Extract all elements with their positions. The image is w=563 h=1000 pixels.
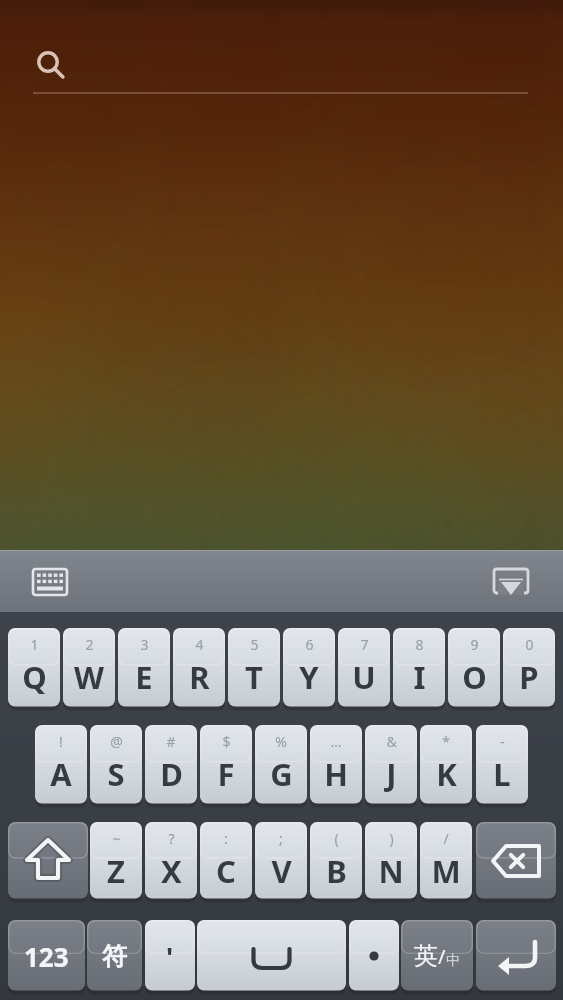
staticText: E bbox=[135, 656, 153, 698]
button[interactable]: 123 bbox=[8, 920, 85, 992]
button[interactable]: ) bbox=[365, 822, 417, 900]
button[interactable]: 6 bbox=[283, 628, 335, 708]
button[interactable]: Hide keyboard bbox=[483, 564, 539, 600]
button[interactable]: Period bbox=[349, 920, 399, 992]
staticText: 6 bbox=[305, 635, 314, 654]
staticText: … bbox=[330, 732, 342, 751]
button[interactable]: 1 bbox=[8, 628, 60, 708]
staticText: % bbox=[275, 732, 287, 751]
button[interactable]: # bbox=[145, 725, 197, 805]
button[interactable]: @ bbox=[90, 725, 142, 805]
staticText: - bbox=[500, 732, 505, 751]
staticText: V bbox=[271, 850, 292, 892]
button[interactable]: 4 bbox=[173, 628, 225, 708]
button[interactable]: 符 bbox=[87, 920, 142, 992]
staticText: ) bbox=[389, 829, 394, 848]
button[interactable]: ' bbox=[145, 920, 195, 992]
staticText: M bbox=[431, 850, 461, 892]
staticText: R bbox=[189, 656, 210, 698]
staticText: ; bbox=[279, 829, 283, 848]
staticText: ? bbox=[168, 829, 175, 848]
staticText: 123 bbox=[24, 939, 69, 974]
staticText: / bbox=[443, 829, 449, 848]
staticText: P bbox=[519, 656, 539, 698]
button[interactable]: : bbox=[200, 822, 252, 900]
button[interactable]: Enter bbox=[476, 920, 556, 992]
button[interactable]: ; bbox=[255, 822, 307, 900]
staticText: 中 bbox=[446, 952, 460, 970]
staticText: H bbox=[324, 753, 348, 795]
button[interactable]: Switch keyboard bbox=[22, 564, 78, 600]
button[interactable]: Shift bbox=[8, 822, 88, 900]
staticText: 英 bbox=[414, 941, 438, 971]
button[interactable]: 9 bbox=[448, 628, 500, 708]
button[interactable]: Switch language bbox=[401, 920, 473, 992]
button[interactable]: Space bbox=[197, 920, 346, 992]
staticText: G bbox=[270, 753, 293, 795]
staticText: T bbox=[245, 656, 263, 698]
staticText: 9 bbox=[470, 635, 479, 654]
staticText: N bbox=[378, 850, 404, 892]
staticText: C bbox=[216, 850, 236, 892]
staticText: & bbox=[386, 732, 397, 751]
button[interactable]: Backspace bbox=[476, 822, 556, 900]
staticText: ~ bbox=[112, 829, 121, 848]
staticText: ! bbox=[59, 732, 63, 751]
staticText: 2 bbox=[85, 635, 94, 654]
button[interactable]: Search bbox=[30, 38, 533, 96]
staticText: U bbox=[352, 656, 376, 698]
staticText: ' bbox=[166, 938, 174, 975]
button[interactable]: % bbox=[255, 725, 307, 805]
button[interactable]: 2 bbox=[63, 628, 115, 708]
staticText: 7 bbox=[360, 635, 369, 654]
button[interactable]: 0 bbox=[503, 628, 555, 708]
staticText: 符 bbox=[102, 941, 127, 972]
staticText: W bbox=[74, 656, 104, 698]
staticText: : bbox=[224, 829, 228, 848]
staticText: I bbox=[413, 656, 426, 698]
staticText: 8 bbox=[415, 635, 424, 654]
staticText: F bbox=[217, 753, 235, 795]
button[interactable]: ? bbox=[145, 822, 197, 900]
staticText: / bbox=[438, 943, 446, 970]
button[interactable]: ~ bbox=[90, 822, 142, 900]
staticText: Y bbox=[299, 656, 319, 698]
button[interactable]: 8 bbox=[393, 628, 445, 708]
button[interactable]: ( bbox=[310, 822, 362, 900]
staticText: Z bbox=[107, 850, 125, 892]
staticText: D bbox=[160, 753, 183, 795]
button[interactable]: 7 bbox=[338, 628, 390, 708]
button[interactable]: / bbox=[420, 822, 472, 900]
button[interactable]: 3 bbox=[118, 628, 170, 708]
staticText: X bbox=[161, 850, 182, 892]
button[interactable]: & bbox=[365, 725, 417, 805]
button[interactable]: * bbox=[420, 725, 472, 805]
staticText: # bbox=[166, 732, 176, 751]
staticText: Q bbox=[22, 656, 47, 698]
staticText: B bbox=[326, 850, 347, 892]
button[interactable]: 5 bbox=[228, 628, 280, 708]
button[interactable]: ! bbox=[35, 725, 87, 805]
staticText: * bbox=[442, 732, 450, 751]
staticText: ( bbox=[334, 829, 339, 848]
staticText: $ bbox=[222, 732, 231, 751]
staticText: S bbox=[107, 753, 125, 795]
staticText: 5 bbox=[250, 635, 259, 654]
staticText: A bbox=[50, 753, 72, 795]
staticText: 0 bbox=[525, 635, 534, 654]
staticText: K bbox=[436, 753, 457, 795]
staticText: 1 bbox=[30, 635, 39, 654]
staticText: @ bbox=[110, 732, 123, 751]
staticText: 3 bbox=[140, 635, 149, 654]
staticText: J bbox=[386, 753, 397, 795]
button[interactable]: $ bbox=[200, 725, 252, 805]
button[interactable]: … bbox=[310, 725, 362, 805]
button[interactable]: - bbox=[476, 725, 528, 805]
staticText: O bbox=[462, 656, 487, 698]
staticText: L bbox=[493, 753, 511, 795]
staticText: 4 bbox=[195, 635, 204, 654]
